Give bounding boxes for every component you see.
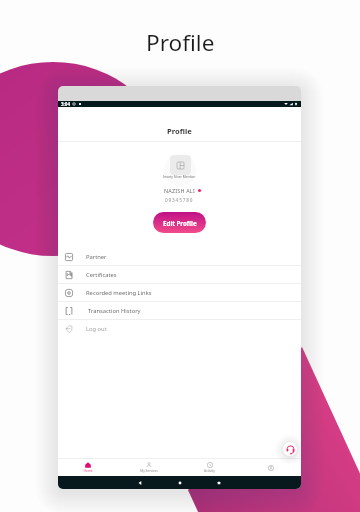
button[interactable]: Log out — [58, 320, 301, 337]
staticText: 3:04 — [61, 101, 70, 107]
button[interactable]: Edit Profile — [153, 212, 206, 233]
button[interactable]: Profile — [240, 459, 301, 476]
staticText: My Services — [140, 469, 158, 473]
staticText: Partner — [86, 253, 107, 261]
button[interactable]: Customer support — [283, 442, 297, 456]
staticText: Profile — [146, 27, 215, 58]
other: Recents — [216, 480, 222, 486]
button[interactable]: Partner — [58, 248, 301, 265]
staticText: Transaction History — [88, 307, 141, 315]
staticText: Recorded meeting Links — [86, 289, 152, 297]
button[interactable]: Certificates — [58, 266, 301, 283]
staticText: Edit Profile — [163, 219, 197, 227]
other: Back — [137, 480, 143, 486]
staticText: Home — [83, 469, 93, 473]
button[interactable]: Transaction History — [58, 302, 301, 319]
staticText: Profile — [167, 126, 192, 136]
staticText: Activity — [204, 469, 215, 473]
other: Home — [177, 480, 183, 486]
button[interactable]: Home — [58, 459, 118, 476]
button[interactable]: My Services — [118, 459, 179, 476]
button[interactable]: Activity — [179, 459, 240, 476]
staticText: Imarty Silver Member — [163, 175, 196, 179]
staticText: Log out — [86, 325, 107, 333]
staticText: 09345780 — [165, 197, 194, 203]
staticText: Certificates — [86, 271, 117, 279]
staticText: NAZISH ALI — [164, 187, 195, 194]
button[interactable]: Recorded meeting Links — [58, 284, 301, 301]
